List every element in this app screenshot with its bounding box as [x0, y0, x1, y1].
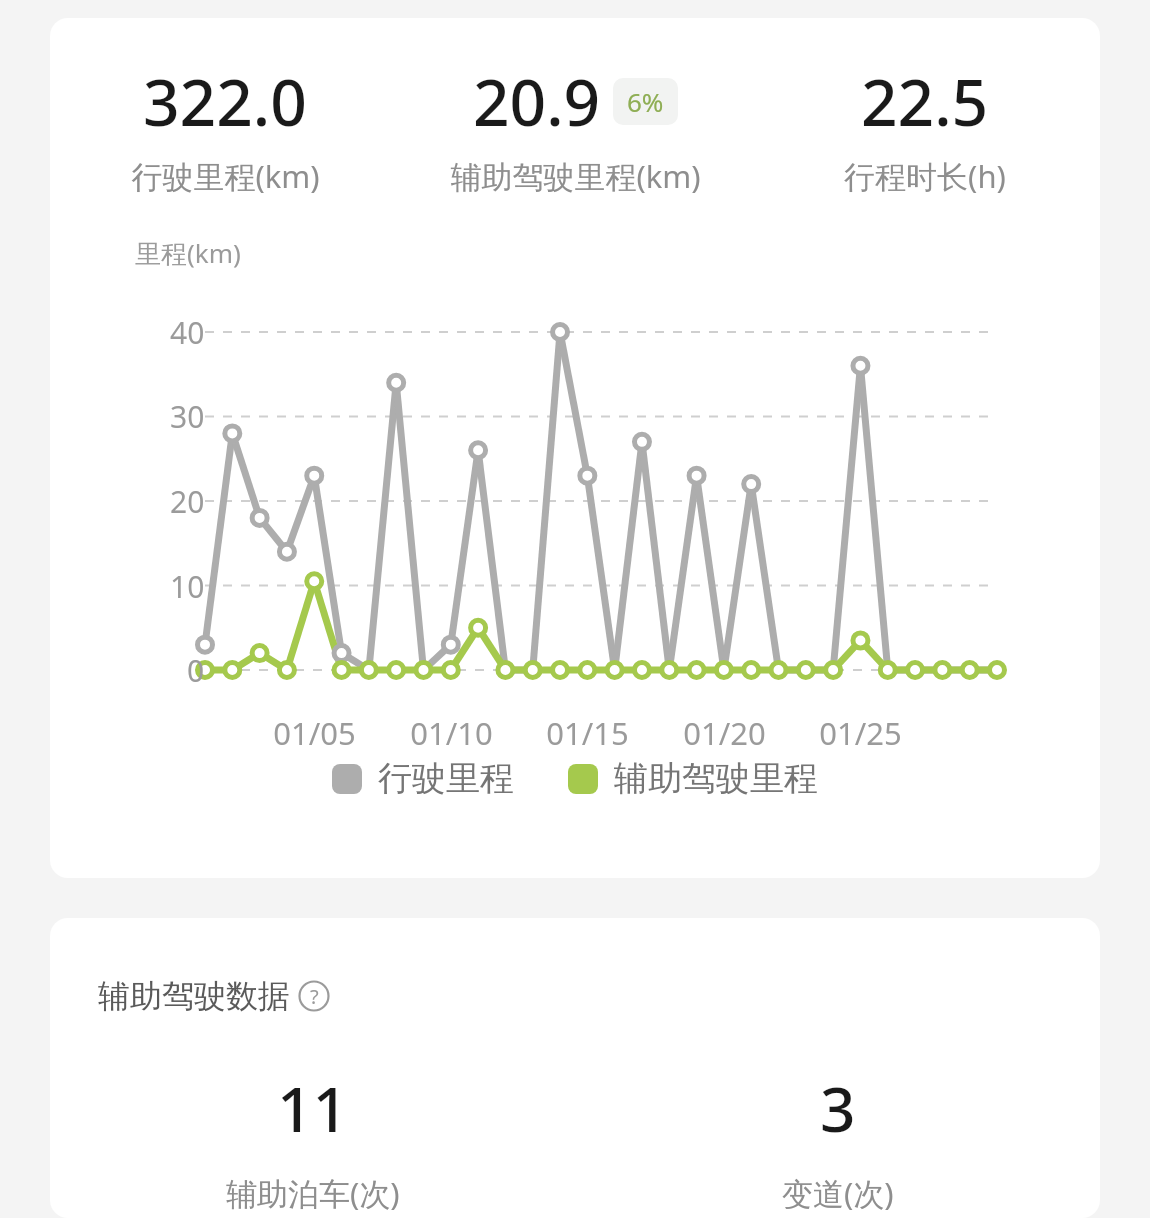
staticText: 20.9	[473, 58, 601, 145]
staticText: 01/15	[546, 712, 629, 754]
button[interactable]: 40	[50, 279, 1100, 749]
staticText: 0	[187, 650, 205, 691]
button[interactable]: 辅助驾驶里程	[568, 757, 818, 800]
button[interactable]: 322.0	[50, 58, 400, 197]
staticText: 01/25	[819, 712, 902, 754]
staticText: 01/10	[410, 712, 493, 754]
staticText: 40	[170, 312, 205, 353]
staticText: 01/20	[683, 712, 766, 754]
button[interactable]: 辅助驾驶数据	[98, 976, 330, 1016]
staticText: 辅助驾驶里程	[614, 757, 818, 800]
button[interactable]: 322.0	[50, 18, 1100, 878]
button[interactable]: 行驶里程	[332, 757, 514, 800]
staticText: 6%	[627, 84, 664, 119]
staticText: 10	[170, 566, 205, 607]
button[interactable]: 20.9	[400, 58, 750, 197]
staticText: 行程时长(h)	[844, 155, 1006, 197]
staticText: 22.5	[861, 58, 989, 145]
staticText: 行驶里程	[378, 757, 514, 800]
staticText: ?	[310, 983, 319, 1010]
staticText: 01/05	[273, 712, 356, 754]
button[interactable]: 11	[50, 1066, 575, 1214]
other: 帮助	[298, 980, 330, 1012]
staticText: 里程(km)	[135, 235, 241, 271]
button[interactable]: 3	[575, 1066, 1100, 1214]
staticText: 变道(次)	[782, 1172, 894, 1214]
staticText: 辅助驾驶数据	[98, 976, 290, 1016]
staticText: 322.0	[143, 58, 307, 145]
staticText: 3	[820, 1066, 856, 1150]
staticText: 20	[170, 481, 205, 522]
button[interactable]: 辅助驾驶数据	[50, 918, 1100, 1218]
staticText: 30	[170, 396, 205, 437]
staticText: 辅助泊车(次)	[226, 1172, 400, 1214]
button[interactable]: 22.5	[750, 58, 1100, 197]
staticText: 行驶里程(km)	[131, 155, 320, 197]
staticText: 11	[277, 1066, 348, 1150]
staticText: 辅助驾驶里程(km)	[450, 155, 701, 197]
